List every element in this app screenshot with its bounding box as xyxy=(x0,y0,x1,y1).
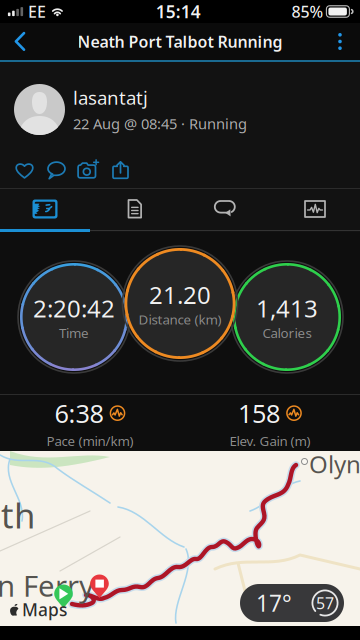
staticText: Pace (min/km) xyxy=(46,432,133,450)
staticText: Elev. Gain (m) xyxy=(229,432,310,450)
button[interactable]: Comment xyxy=(40,156,72,184)
button[interactable]: Laps xyxy=(180,189,270,229)
staticText: 85% xyxy=(291,1,323,22)
staticText: 17° xyxy=(256,588,292,618)
button[interactable]: More options xyxy=(320,23,360,60)
staticText: EE xyxy=(28,1,46,22)
staticText: 6:38 xyxy=(54,396,103,430)
staticText: lasantatj xyxy=(73,85,148,110)
staticText: Neath Port Talbot Running xyxy=(77,31,282,52)
button[interactable]: Activity xyxy=(0,189,90,229)
button[interactable]: Add photo xyxy=(72,156,104,184)
staticText: 1,413 xyxy=(256,292,318,324)
staticText: Distance (km) xyxy=(138,311,221,328)
staticText: 21.20 xyxy=(149,279,211,311)
staticText: Maps xyxy=(22,598,67,621)
button[interactable]: Heart rate xyxy=(270,189,360,229)
staticText: 158 xyxy=(238,396,280,430)
button[interactable]: Back xyxy=(0,23,40,60)
button[interactable]: Details xyxy=(90,189,180,229)
staticText: 22 Aug @ 08:45 · Running xyxy=(73,114,247,133)
staticText: Time xyxy=(59,324,89,342)
button[interactable]: Like xyxy=(8,156,40,184)
staticText: th xyxy=(1,492,35,538)
staticText: 2:20:42 xyxy=(33,292,115,324)
staticText: Olyn xyxy=(309,448,360,480)
staticText: 57 xyxy=(316,592,334,614)
button[interactable]: Share xyxy=(104,156,136,184)
staticText: Calories xyxy=(262,324,311,342)
staticText: n Ferry xyxy=(0,566,94,605)
staticText: 15:14 xyxy=(156,0,201,23)
